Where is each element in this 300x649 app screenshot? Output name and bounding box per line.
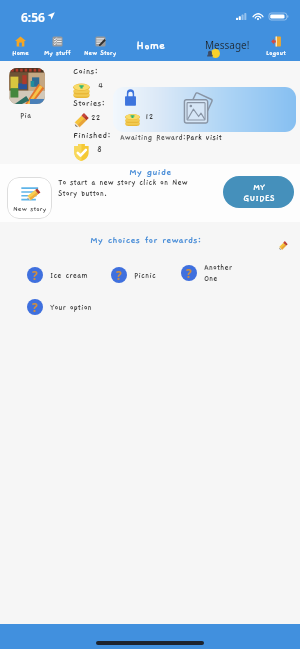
- button[interactable]: My stuff: [35, 33, 79, 60]
- staticText: Coins:: [73, 66, 98, 76]
- staticText: New Story: [84, 49, 117, 56]
- staticText: Awaiting Reward:: [120, 133, 186, 142]
- staticText: Picnic: [134, 271, 156, 280]
- button[interactable]: ?: [27, 267, 111, 283]
- staticText: 12: [145, 112, 154, 121]
- staticText: ?: [116, 267, 122, 283]
- button[interactable]: ?: [181, 263, 255, 283]
- button[interactable]: Message!: [204, 36, 250, 60]
- staticText: My guide: [129, 167, 172, 178]
- button[interactable]: New story: [7, 177, 52, 219]
- staticText: Home: [12, 49, 29, 56]
- staticText: Stories:: [73, 98, 105, 108]
- staticText: Home: [136, 39, 166, 52]
- staticText: ?: [32, 267, 38, 283]
- staticText: To start a new story click on New Story …: [58, 178, 199, 199]
- staticText: Park visit: [186, 133, 222, 142]
- staticText: Finished:: [73, 130, 111, 140]
- staticText: 4: [98, 81, 103, 90]
- button[interactable]: Home: [0, 33, 42, 60]
- button[interactable]: New Story: [78, 33, 122, 60]
- staticText: Message!: [205, 38, 250, 52]
- staticText: 8: [97, 145, 102, 154]
- staticText: Another One: [204, 263, 233, 283]
- staticText: ?: [32, 299, 38, 315]
- staticText: Pia: [20, 111, 32, 120]
- button[interactable]: Logout: [254, 33, 298, 60]
- button[interactable]: MY GUIDES: [223, 176, 294, 208]
- staticText: My stuff: [44, 49, 71, 56]
- button[interactable]: ?: [27, 299, 117, 315]
- staticText: Your option: [50, 303, 92, 312]
- staticText: My choices for rewards:: [90, 235, 202, 246]
- staticText: 6:56: [21, 9, 45, 25]
- staticText: 22: [91, 113, 101, 122]
- staticText: Logout: [266, 49, 286, 56]
- button[interactable]: ?: [111, 267, 179, 283]
- button[interactable]: [9, 68, 45, 104]
- staticText: MY GUIDES: [243, 182, 275, 203]
- staticText: New story: [13, 205, 47, 213]
- staticText: ?: [186, 265, 192, 281]
- staticText: Ice cream: [50, 271, 88, 280]
